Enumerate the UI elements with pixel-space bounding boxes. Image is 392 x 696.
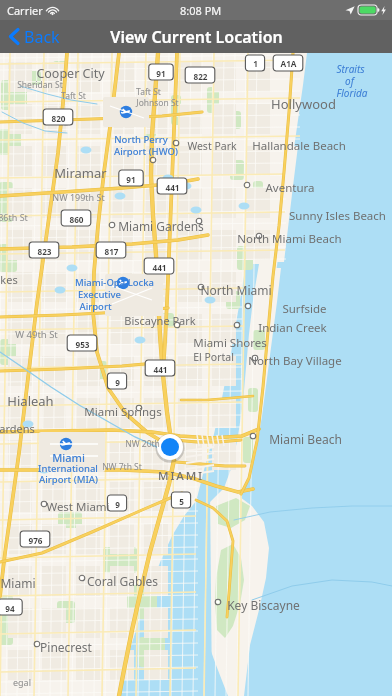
staticText: Straits bbox=[336, 62, 365, 76]
staticText: W 49th St bbox=[15, 328, 58, 341]
staticText: Miramar bbox=[54, 164, 107, 182]
staticText: 822 bbox=[193, 71, 208, 82]
staticText: of bbox=[345, 74, 354, 88]
staticText: Coral Gables bbox=[87, 573, 158, 589]
staticText: West Miami bbox=[46, 499, 110, 515]
staticText: International bbox=[38, 462, 98, 475]
staticText: egal bbox=[13, 676, 31, 688]
staticText: NW 199th St bbox=[52, 191, 105, 203]
staticText: 8:08 PM bbox=[180, 3, 222, 18]
staticText: Miami Springs bbox=[84, 404, 162, 420]
staticText: Miami Gardens bbox=[118, 218, 204, 234]
staticText: 976 bbox=[28, 535, 43, 546]
staticText: Back bbox=[24, 26, 60, 48]
staticText: Key Biscayne bbox=[227, 597, 300, 613]
staticText: Airport bbox=[79, 300, 112, 313]
staticText: Miami bbox=[52, 450, 85, 465]
staticText: Aventura bbox=[265, 180, 315, 196]
staticText: 9 bbox=[115, 377, 120, 388]
staticText: 953 bbox=[75, 339, 90, 350]
staticText: Sheridan St bbox=[17, 79, 63, 91]
staticText: 1 bbox=[253, 58, 258, 69]
staticText: Sunny Isles Beach bbox=[289, 208, 386, 224]
staticText: Pinecrest bbox=[40, 639, 92, 655]
staticText: 441 bbox=[152, 262, 167, 273]
staticText: A1A bbox=[280, 58, 297, 69]
staticText: 5 bbox=[179, 496, 184, 507]
staticText: kes bbox=[0, 272, 18, 287]
staticText: Johnson St bbox=[136, 97, 179, 109]
staticText: NW 20th bbox=[125, 438, 160, 450]
staticText: North Perry bbox=[114, 133, 168, 146]
staticText: View Current Location bbox=[110, 26, 283, 48]
staticText: Indian Creek bbox=[258, 320, 327, 336]
staticText: Gardens bbox=[0, 421, 35, 436]
staticText: Carrier bbox=[7, 3, 43, 18]
staticText: 820 bbox=[51, 113, 66, 124]
staticText: Hallandale Beach bbox=[252, 138, 346, 154]
staticText: 860 bbox=[69, 214, 84, 225]
staticText: Miami Shores bbox=[193, 335, 267, 351]
staticText: Airport (HWO) bbox=[114, 145, 178, 158]
staticText: El Portal bbox=[193, 350, 234, 364]
staticText: North Miami bbox=[200, 282, 272, 298]
staticText: Hialeah bbox=[7, 392, 54, 410]
staticText: 441 bbox=[153, 364, 168, 375]
staticText: 823 bbox=[37, 246, 52, 257]
staticText: 9 bbox=[115, 499, 120, 510]
staticText: 94 bbox=[5, 603, 15, 614]
staticText: West Park bbox=[187, 139, 237, 153]
staticText: MIAMI bbox=[158, 468, 204, 484]
staticText: Airport (MIA) bbox=[39, 473, 98, 486]
staticText: Miami bbox=[0, 575, 36, 591]
button[interactable]: Map showing current location bbox=[0, 53, 392, 696]
staticText: Cooper City bbox=[36, 65, 105, 82]
staticText: Miami Beach bbox=[269, 431, 342, 447]
staticText: 817 bbox=[104, 246, 119, 257]
staticText: 91 bbox=[156, 68, 166, 79]
staticText: North Bay Village bbox=[248, 353, 342, 369]
staticText: Hollywood bbox=[271, 95, 336, 113]
staticText: Surfside bbox=[282, 301, 327, 317]
staticText: NW 7th St bbox=[102, 461, 142, 473]
staticText: Biscayne Park bbox=[124, 313, 196, 328]
staticText: Executive bbox=[78, 288, 121, 301]
staticText: Florida bbox=[336, 86, 368, 100]
staticText: North Miami Beach bbox=[237, 231, 342, 247]
staticText: Taft St bbox=[136, 86, 161, 98]
staticText: Miami-Opa Locka bbox=[75, 276, 154, 289]
staticText: 86th St bbox=[0, 211, 28, 223]
staticText: Taft St bbox=[61, 90, 86, 102]
staticText: 441 bbox=[165, 182, 180, 193]
button[interactable]: Back bbox=[0, 20, 72, 53]
staticText: 91 bbox=[126, 174, 136, 185]
